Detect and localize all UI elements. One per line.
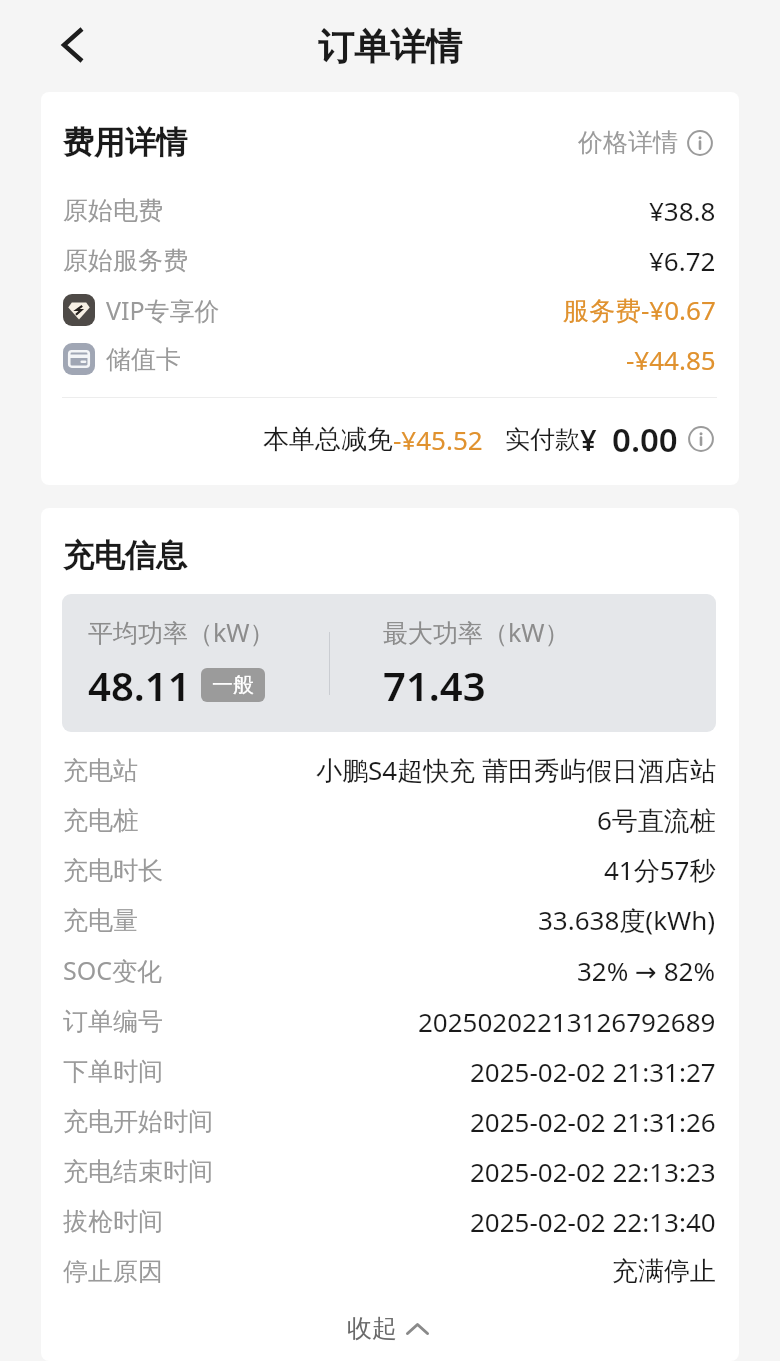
staticText: 小鹏S4超快充 莆田秀屿假日酒店站 bbox=[316, 752, 716, 788]
staticText: 充满停止 bbox=[612, 1255, 716, 1288]
staticText: VIP专享价 bbox=[106, 293, 220, 327]
staticText: 服务费-¥0.67 bbox=[563, 292, 716, 328]
staticText: 收起 bbox=[347, 1313, 397, 1344]
staticText: 充电时长 bbox=[63, 855, 163, 886]
staticText: 20250202213126792689 bbox=[418, 1004, 716, 1039]
staticText: -¥44.85 bbox=[626, 342, 716, 377]
staticText: 2025-02-02 22:13:40 bbox=[470, 1204, 716, 1239]
staticText: 订单编号 bbox=[63, 1006, 163, 1037]
button[interactable]: 价格详情 bbox=[578, 127, 716, 158]
staticText: 6号直流桩 bbox=[597, 802, 716, 838]
staticText: 一般 bbox=[212, 672, 254, 698]
staticText: 48.11 bbox=[88, 658, 191, 712]
staticText: ¥38.8 bbox=[649, 193, 716, 228]
staticText: 充电站 bbox=[63, 755, 138, 786]
staticText: -¥45.52 bbox=[393, 422, 483, 457]
staticText: 本单总减免 bbox=[263, 423, 393, 456]
staticText: 充电结束时间 bbox=[63, 1156, 213, 1187]
staticText: 储值卡 bbox=[106, 344, 181, 375]
staticText: 拔枪时间 bbox=[63, 1206, 163, 1237]
staticText: 0.00 bbox=[612, 417, 678, 462]
staticText: 33.638度(kWh) bbox=[538, 902, 716, 938]
staticText: 71.43 bbox=[383, 658, 486, 712]
staticText: ¥ bbox=[580, 420, 597, 459]
staticText: 32% → 82% bbox=[577, 953, 716, 988]
staticText: 平均功率（kW） bbox=[88, 615, 275, 649]
staticText: 费用详情 bbox=[63, 123, 187, 162]
staticText: 价格详情 bbox=[578, 127, 678, 158]
staticText: 订单详情 bbox=[318, 24, 462, 69]
staticText: 下单时间 bbox=[63, 1056, 163, 1087]
button[interactable]: 收起 bbox=[333, 1305, 443, 1352]
staticText: 原始电费 bbox=[63, 195, 163, 226]
staticText: 41分57秒 bbox=[604, 852, 716, 888]
staticText: 充电信息 bbox=[63, 536, 187, 575]
staticText: 2025-02-02 22:13:23 bbox=[470, 1154, 716, 1189]
staticText: ¥6.72 bbox=[649, 243, 716, 278]
staticText: 最大功率（kW） bbox=[383, 615, 570, 649]
staticText: 充电桩 bbox=[63, 805, 138, 836]
staticText: 实付款 bbox=[505, 424, 580, 455]
staticText: 2025-02-02 21:31:26 bbox=[470, 1104, 716, 1139]
staticText: SOC变化 bbox=[63, 953, 163, 987]
staticText: 充电开始时间 bbox=[63, 1106, 213, 1137]
staticText: 2025-02-02 21:31:27 bbox=[470, 1054, 716, 1089]
button[interactable]: Back bbox=[44, 16, 101, 73]
staticText: 停止原因 bbox=[63, 1256, 163, 1287]
staticText: 原始服务费 bbox=[63, 245, 188, 276]
staticText: 充电量 bbox=[63, 905, 138, 936]
